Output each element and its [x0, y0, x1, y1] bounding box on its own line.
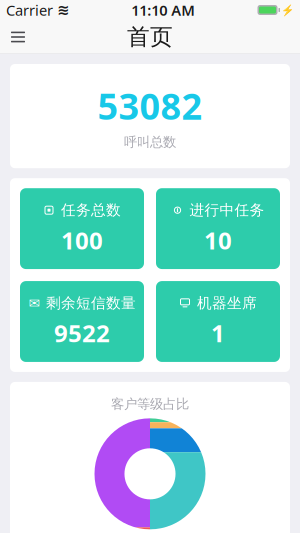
staticText: Carrier — [6, 0, 53, 20]
staticText: 10 — [204, 224, 232, 256]
button[interactable]: 机器坐席 — [156, 281, 280, 362]
staticText: 1 — [211, 317, 225, 349]
staticText: 剩余短信数量 — [46, 294, 136, 312]
button[interactable]: ✉ — [20, 281, 144, 362]
staticText: 首页 — [127, 23, 173, 51]
staticText: ✉ — [28, 295, 39, 311]
staticText: 任务总数 — [61, 201, 121, 219]
staticText: 9522 — [54, 317, 110, 349]
button[interactable]: 任务总数 — [20, 188, 144, 269]
staticText: ≋ — [57, 2, 69, 18]
staticText: 机器坐席 — [197, 294, 257, 312]
staticText: 呼叫总数 — [124, 134, 176, 150]
staticText: ⚡ — [281, 4, 294, 16]
button[interactable]: Menu — [0, 20, 36, 54]
staticText: 53082 — [97, 82, 202, 130]
staticText: 100 — [61, 224, 103, 256]
staticText: 11:10 AM — [131, 0, 195, 20]
staticText: 进行中任务 — [189, 201, 264, 219]
staticText: 客户等级占比 — [111, 396, 189, 412]
button[interactable]: 进行中任务 — [156, 188, 280, 269]
